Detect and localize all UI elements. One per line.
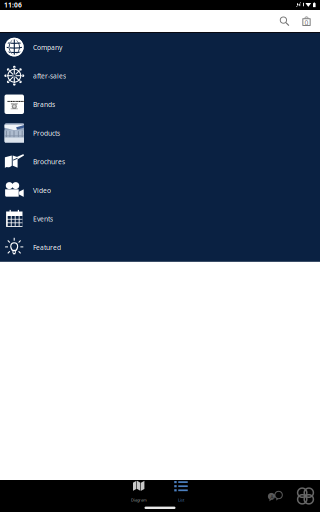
staticText: Brochures [33,157,65,166]
staticText: Company [33,43,62,52]
button[interactable]: Shopping bag, 0 items [296,10,317,31]
staticText: A [270,493,273,500]
button[interactable]: Diagram [118,479,160,512]
staticText: 0 [304,18,308,27]
button[interactable]: after-sales [0,62,320,90]
button[interactable]: Events [0,205,320,233]
staticText: Featured [33,243,61,252]
staticText: after-sales [33,71,66,80]
staticText: List [178,497,184,503]
staticText: Video [33,186,51,195]
button[interactable]: Messages [267,490,285,502]
button[interactable]: Company [0,33,320,62]
staticText: 11:06 [4,1,22,9]
button[interactable]: Brands [0,90,320,119]
button[interactable]: Brochures [0,147,320,176]
button[interactable]: Video [0,176,320,205]
button[interactable]: Featured [0,233,320,262]
button[interactable]: List [160,479,202,512]
staticText: Diagram [131,497,147,503]
staticText: Events [33,214,53,223]
button[interactable]: Recent apps [297,487,314,504]
button[interactable]: Products [0,119,320,147]
button[interactable]: Search [273,10,296,31]
staticText: Brands [33,100,55,109]
staticText: Products [33,129,60,138]
